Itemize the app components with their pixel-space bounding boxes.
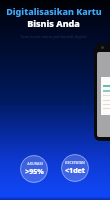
- staticText: <1det: [65, 166, 85, 176]
- staticText: Bisnis Anda: [27, 17, 80, 29]
- staticText: Scan kartu nama jadi kontak digital: [20, 34, 87, 39]
- staticText: >95%: [25, 167, 44, 177]
- button[interactable]: KECEPATAN: [61, 154, 89, 182]
- button[interactable]: AKURASI: [20, 155, 48, 183]
- staticText: Digitalisasikan Kartu: [6, 5, 102, 17]
- button[interactable]: Pratinjau aplikasi: [94, 43, 110, 141]
- staticText: AKURASI: [27, 161, 43, 166]
- staticText: KECEPATAN: [65, 160, 85, 165]
